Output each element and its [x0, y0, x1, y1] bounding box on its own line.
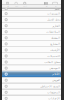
- staticText: الموسيقى: [49, 67, 60, 70]
- button[interactable]: Refresh: [12, 0, 20, 8]
- staticText: بحث: [54, 5, 56, 7]
- button[interactable]: الصور: [2, 7, 61, 11]
- staticText: العروض: [52, 79, 60, 82]
- staticText: الصور: [54, 7, 60, 10]
- staticText: ملف: [6, 5, 8, 7]
- staticText: عرض: [23, 5, 27, 7]
- button[interactable]: File: [3, 0, 12, 8]
- button[interactable]: Search: [50, 0, 60, 8]
- button[interactable]: النسخ الاحتياطي: [2, 83, 61, 89]
- staticText: النسخ الاحتياطي: [40, 85, 60, 88]
- button[interactable]: التقارير: [2, 23, 61, 29]
- staticText: مجلد العمل: [47, 18, 60, 21]
- staticText: ترتيب: [45, 5, 47, 7]
- button[interactable]: View: [20, 0, 29, 8]
- button[interactable]: المحذوفات: [2, 89, 61, 95]
- button[interactable]: العروض: [2, 77, 61, 83]
- staticText: المحذوفات: [47, 91, 60, 94]
- button[interactable]: سطح المكتب: [2, 59, 61, 65]
- button[interactable]: الملاحظات: [2, 29, 61, 35]
- staticText: المستندات: [47, 12, 60, 15]
- staticText: الأرشيف: [50, 48, 60, 51]
- staticText: الملاحظات: [46, 30, 60, 33]
- staticText: الأفلام: [52, 73, 60, 76]
- button[interactable]: التحميلات: [2, 53, 61, 59]
- button[interactable]: الموسيقى: [2, 65, 61, 71]
- staticText: تحديث: [15, 5, 18, 7]
- staticText: الإعدادات: [48, 97, 60, 100]
- button[interactable]: الأفلام: [2, 71, 61, 77]
- button[interactable]: Arrange: [42, 0, 50, 8]
- staticText: المفضلة: [51, 36, 60, 39]
- button[interactable]: مجلد العمل: [2, 17, 61, 23]
- button[interactable]: المستندات: [2, 11, 61, 17]
- staticText: المشاريع: [50, 42, 60, 45]
- button[interactable]: الإعدادات: [2, 95, 61, 100]
- staticText: التقارير: [52, 24, 60, 27]
- staticText: سطح المكتب: [44, 60, 60, 63]
- staticText: التحميلات: [47, 54, 60, 57]
- button[interactable]: الأرشيف: [2, 47, 61, 53]
- button[interactable]: المفضلة: [2, 35, 61, 41]
- button[interactable]: المشاريع: [2, 41, 61, 47]
